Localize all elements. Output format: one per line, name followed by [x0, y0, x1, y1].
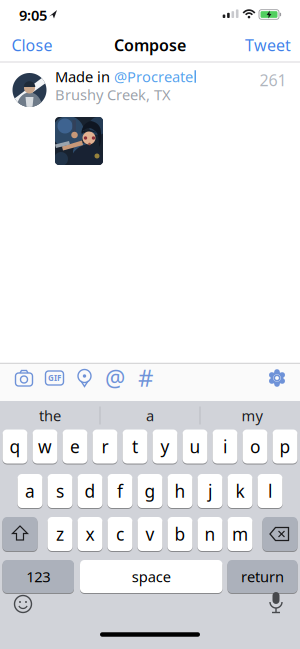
staticText: 261	[259, 69, 286, 91]
button[interactable]: n	[197, 517, 222, 551]
staticText: Close	[11, 34, 52, 56]
staticText: g	[144, 479, 155, 502]
staticText: f	[117, 479, 123, 502]
staticText: r	[101, 435, 108, 458]
staticText: y	[160, 435, 169, 458]
button[interactable]: m	[227, 517, 252, 551]
button[interactable]: y	[152, 429, 177, 463]
button[interactable]: j	[197, 474, 222, 508]
button[interactable]: the	[2, 402, 98, 428]
staticText: n	[204, 522, 215, 545]
button[interactable]: GIF	[41, 365, 67, 391]
button[interactable]	[2, 517, 37, 551]
staticText: x	[85, 522, 94, 545]
button[interactable]: f	[107, 474, 132, 508]
staticText: @	[105, 363, 125, 393]
staticText: p	[279, 435, 290, 458]
button[interactable]: g	[137, 474, 162, 508]
button[interactable]: a	[102, 402, 198, 428]
staticText: 123	[26, 567, 50, 586]
staticText: d	[84, 479, 95, 502]
button[interactable]: u	[182, 429, 207, 463]
button[interactable]: h	[167, 474, 192, 508]
staticText: q	[9, 435, 20, 458]
staticText: Brushy Creek, TX	[55, 85, 171, 104]
button[interactable]: i	[212, 429, 237, 463]
button[interactable]: x	[77, 517, 102, 551]
staticText: Compose	[114, 34, 186, 56]
staticText: e	[70, 435, 80, 458]
button[interactable]: space	[80, 560, 222, 593]
button[interactable]	[264, 365, 290, 391]
staticText: return	[241, 567, 284, 586]
button[interactable]: Close	[7, 33, 57, 57]
button[interactable]: t	[122, 429, 147, 463]
staticText: GIF	[48, 373, 61, 383]
button[interactable]	[262, 517, 297, 551]
staticText: o	[250, 435, 260, 458]
staticText: t	[132, 435, 138, 458]
button[interactable]: #	[133, 364, 159, 390]
staticText: v	[145, 522, 154, 545]
button[interactable]	[11, 592, 35, 616]
staticText: j	[208, 479, 212, 502]
button[interactable]: d	[77, 474, 102, 508]
staticText: w	[38, 435, 52, 458]
button[interactable]: s	[47, 474, 72, 508]
button[interactable]	[55, 117, 103, 165]
staticText: i	[223, 435, 227, 458]
button[interactable]: a	[17, 474, 42, 508]
button[interactable]: return	[227, 560, 297, 593]
staticText: l	[268, 479, 272, 502]
button[interactable]	[11, 365, 37, 391]
button[interactable]: b	[167, 517, 192, 551]
staticText: 9:05	[19, 5, 47, 25]
button[interactable]: Tweet	[240, 33, 296, 57]
button[interactable]: v	[137, 517, 162, 551]
staticText: s	[56, 479, 64, 502]
button[interactable]: r	[92, 429, 117, 463]
button[interactable]: l	[257, 474, 282, 508]
button[interactable]: w	[32, 429, 57, 463]
staticText: the	[39, 406, 61, 425]
button[interactable]: 123	[2, 560, 74, 593]
button[interactable]: k	[227, 474, 252, 508]
button[interactable]	[71, 365, 97, 391]
staticText: space	[132, 567, 171, 586]
staticText: z	[56, 522, 64, 545]
staticText: a	[25, 479, 35, 502]
staticText: m	[232, 522, 248, 545]
button[interactable]	[266, 590, 286, 616]
button[interactable]: o	[242, 429, 267, 463]
button[interactable]: p	[272, 429, 297, 463]
staticText: b	[174, 522, 185, 545]
staticText: c	[116, 522, 124, 545]
staticText: h	[174, 479, 185, 502]
button[interactable]: c	[107, 517, 132, 551]
staticText: a	[146, 406, 154, 425]
staticText: Made in	[55, 67, 114, 86]
staticText: #	[138, 362, 154, 393]
button[interactable]: q	[2, 429, 27, 463]
staticText: my	[241, 406, 262, 425]
staticText: k	[235, 479, 244, 502]
button[interactable]: my	[204, 402, 300, 428]
staticText: @Procreate	[114, 67, 193, 86]
button[interactable]: e	[62, 429, 87, 463]
button[interactable]: z	[47, 517, 72, 551]
staticText: Tweet	[245, 34, 291, 56]
button[interactable]: @	[102, 365, 128, 391]
staticText: u	[189, 435, 200, 458]
